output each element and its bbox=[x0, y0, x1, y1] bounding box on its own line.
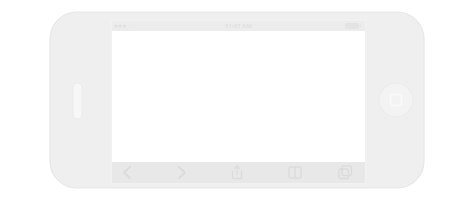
button[interactable]: Back bbox=[117, 162, 137, 183]
button[interactable]: Share bbox=[227, 162, 247, 183]
button[interactable]: Tabs bbox=[335, 162, 355, 183]
staticText: 11:47 AM bbox=[225, 22, 252, 30]
button[interactable]: Forward bbox=[172, 162, 192, 183]
button[interactable]: Bookmarks bbox=[285, 162, 305, 183]
